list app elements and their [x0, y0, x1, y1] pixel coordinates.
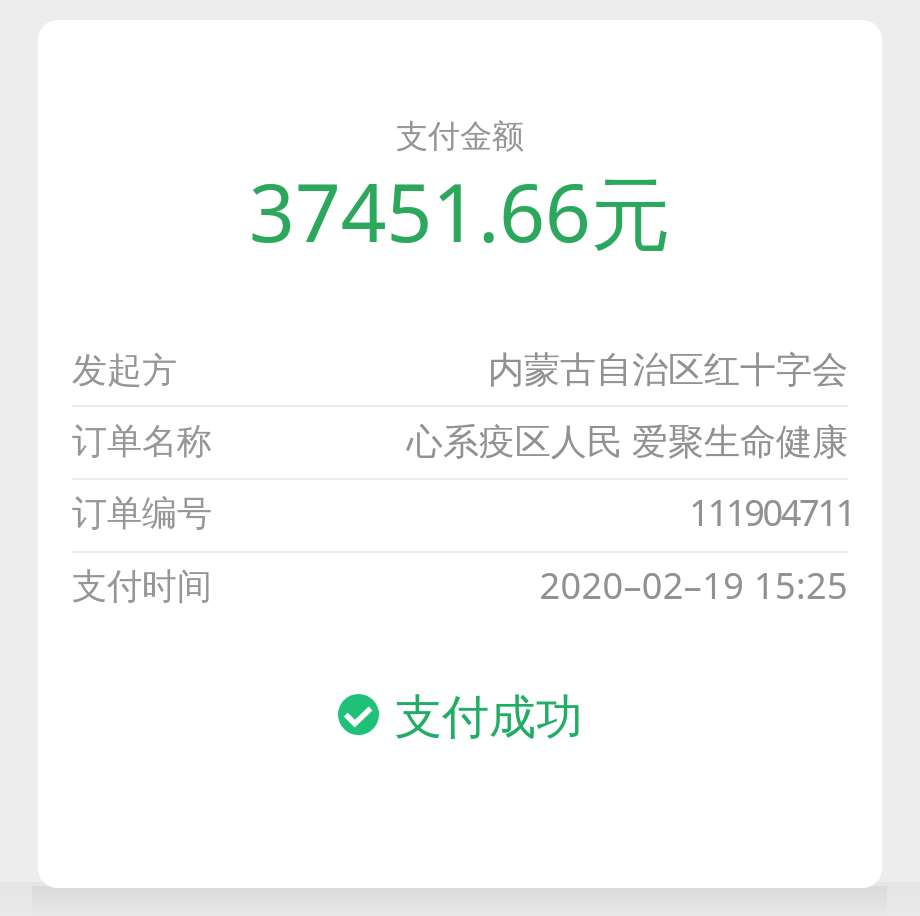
staticText: 37451.66元: [38, 156, 882, 265]
staticText: 支付成功: [395, 688, 583, 740]
staticText: 内蒙古自治区红十字会: [185, 347, 848, 392]
other: Payment succeeded: [338, 694, 379, 735]
button[interactable]: 支付时间: [38, 550, 882, 621]
staticText: 支付金额: [38, 116, 882, 156]
button[interactable]: Payment succeeded: [38, 688, 882, 740]
button[interactable]: 订单编号: [38, 477, 882, 548]
staticText: 111904711: [226, 488, 854, 537]
staticText: 发起方: [72, 348, 177, 392]
button[interactable]: 订单名称: [38, 405, 882, 476]
staticText: 订单名称: [72, 419, 212, 463]
staticText: 2020–02–19 15:25: [220, 561, 848, 610]
staticText: 订单编号: [72, 491, 212, 535]
staticText: 支付时间: [72, 564, 212, 608]
staticText: 心系疫区人民 爱聚生命健康: [220, 416, 848, 465]
button[interactable]: 发起方: [38, 334, 882, 405]
